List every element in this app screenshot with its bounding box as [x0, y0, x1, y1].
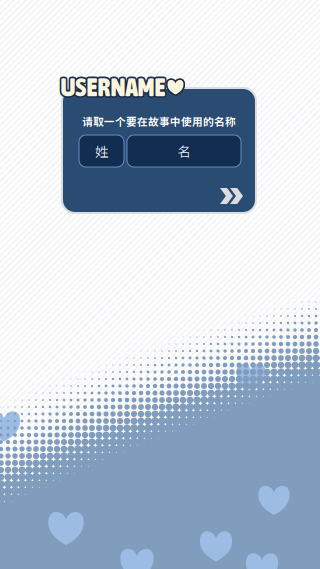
- staticText: USERNAME: [60, 74, 165, 103]
- button[interactable]: 名: [127, 135, 241, 167]
- button[interactable]: 姓: [79, 135, 124, 167]
- staticText: USERNAME: [62, 72, 167, 101]
- staticText: USERNAME: [59, 71, 164, 100]
- staticText: USERNAME: [60, 72, 165, 101]
- staticText: 请取一个要在故事中使用的名称: [82, 113, 236, 129]
- staticText: USERNAME: [62, 74, 167, 103]
- staticText: USERNAME: [62, 71, 167, 100]
- button[interactable]: Continue: [215, 183, 248, 209]
- staticText: 姓: [95, 141, 108, 161]
- staticText: USERNAME: [60, 71, 165, 100]
- staticText: USERNAME: [59, 72, 164, 101]
- staticText: USERNAME: [59, 74, 164, 103]
- staticText: 名: [177, 141, 190, 161]
